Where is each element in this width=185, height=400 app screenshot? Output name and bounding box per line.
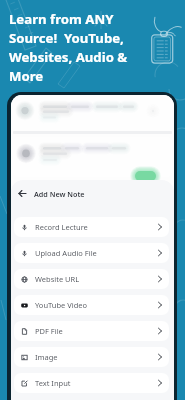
other: Back	[17, 188, 28, 199]
staticText: YouTube Video	[35, 300, 88, 310]
button[interactable]: Text Input	[14, 373, 169, 393]
staticText: Learn from ANY Source! YouTube, Websites…	[9, 10, 131, 85]
button[interactable]: YouTube Video	[14, 295, 169, 315]
button[interactable]: PDF File	[14, 321, 169, 341]
button[interactable]: Image	[14, 347, 169, 367]
button[interactable]: Back	[11, 180, 174, 207]
staticText: Record Lecture	[35, 222, 88, 232]
button[interactable]: Record Lecture	[14, 217, 169, 237]
button[interactable]: Upload Audio File	[14, 243, 169, 263]
staticText: Text Input	[35, 378, 71, 388]
button[interactable]: Website URL	[14, 269, 169, 289]
staticText: PDF File	[35, 326, 63, 336]
staticText: Website URL	[35, 274, 80, 284]
staticText: Upload Audio File	[35, 248, 97, 258]
staticText: Add New Note	[34, 189, 85, 199]
staticText: Image	[35, 352, 58, 362]
